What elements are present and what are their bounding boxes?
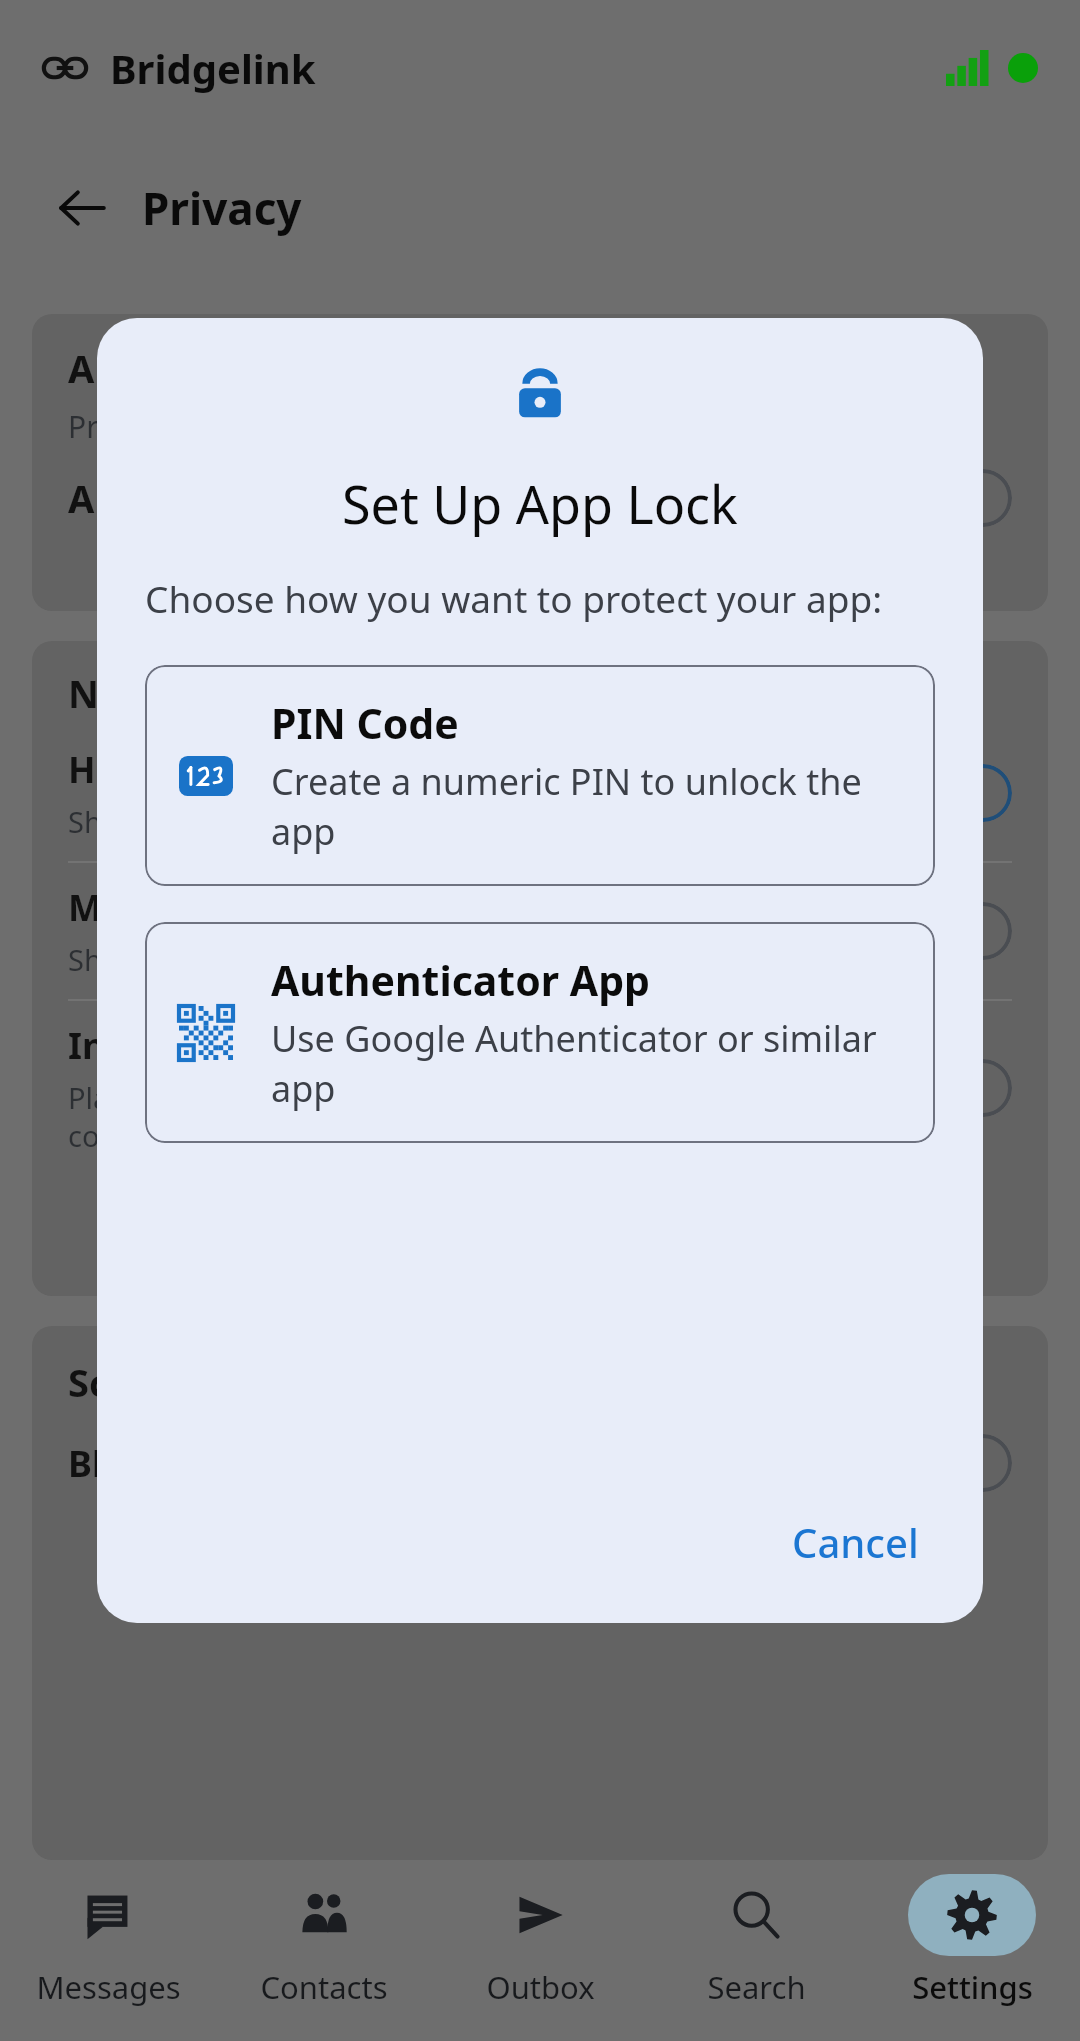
staticText: Set Up App Lock <box>342 468 738 539</box>
button[interactable]: PIN code <box>145 665 935 886</box>
staticText: PIN Code <box>271 695 459 751</box>
staticText: Outbox <box>486 1966 595 2008</box>
staticText: Protect with PIN <box>68 406 297 447</box>
staticText: Incognito <box>68 1021 242 1070</box>
staticText: Show generic text <box>68 802 311 841</box>
button[interactable]: Messages <box>0 1860 216 2041</box>
staticText: Messages <box>36 1966 181 2008</box>
staticText: Bridgelink <box>110 41 316 95</box>
staticText: Use Google Authenticator or similar app <box>271 1014 901 1113</box>
staticText: Play no sound on content <box>68 1078 303 1155</box>
staticText: Block Screenshots <box>68 1439 394 1488</box>
button[interactable]: Authenticator app <box>145 922 935 1143</box>
staticText: Create a numeric PIN to unlock the app <box>271 757 901 856</box>
staticText: Authenticator App <box>271 952 650 1008</box>
staticText: Screen Security <box>68 1356 360 1408</box>
button[interactable]: Search <box>648 1860 864 2041</box>
button[interactable]: Contacts <box>216 1860 432 2041</box>
staticText: Notifications <box>68 667 315 719</box>
staticText: Cancel <box>792 1515 919 1569</box>
button[interactable]: Cancel <box>776 1505 935 1579</box>
button[interactable]: Settings <box>864 1860 1080 2041</box>
staticText: Show less info <box>68 940 262 979</box>
button[interactable]: Outbox <box>432 1860 648 2041</box>
other: PIN code <box>179 749 233 803</box>
other: Authenticator app <box>179 1006 233 1060</box>
staticText: App Lock <box>68 472 241 524</box>
staticText: Search <box>707 1966 806 2008</box>
staticText: Settings <box>912 1966 1033 2008</box>
staticText: Hide content <box>68 745 301 794</box>
staticText: Contacts <box>260 1966 388 2008</box>
staticText: Choose how you want to protect your app: <box>145 573 883 623</box>
staticText: Mute previews <box>68 883 332 932</box>
staticText: App Lock <box>68 342 241 394</box>
staticText: Privacy <box>142 178 302 238</box>
